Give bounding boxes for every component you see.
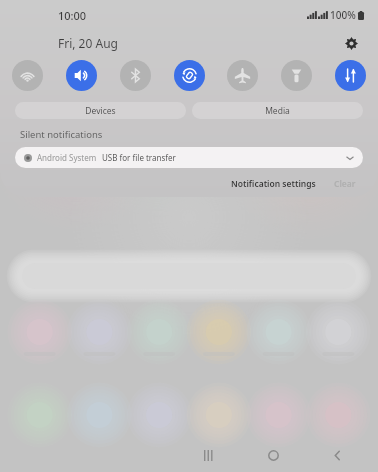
button[interactable]: Mobile data	[335, 60, 366, 91]
button[interactable]: Bluetooth	[120, 60, 151, 91]
staticText: Clear	[334, 178, 356, 190]
staticText: Fri, 20 Aug	[58, 35, 118, 51]
staticText: 10:00	[58, 8, 87, 23]
button[interactable]: Home	[254, 438, 292, 472]
button[interactable]: Sound	[66, 60, 97, 91]
staticText: Silent notifications	[20, 128, 103, 141]
button[interactable]: Flashlight	[281, 60, 312, 91]
staticText: 100%	[330, 8, 356, 22]
button[interactable]: Recents	[190, 438, 228, 472]
button[interactable]: Clear	[330, 176, 360, 192]
staticText: Media	[265, 105, 290, 117]
button[interactable]: Wi-Fi	[12, 60, 43, 91]
staticText: USB for file transfer	[102, 152, 176, 163]
button[interactable]: Auto rotate	[174, 60, 205, 91]
button[interactable]: Back	[318, 438, 356, 472]
staticText: Android System	[37, 152, 97, 163]
button[interactable]: Android System	[15, 147, 363, 168]
staticText: Notification settings	[231, 178, 316, 190]
staticText: Devices	[85, 105, 116, 117]
button[interactable]: Notification settings	[227, 176, 320, 192]
button[interactable]: Media	[192, 102, 363, 119]
button[interactable]: Settings	[340, 32, 362, 54]
button[interactable]: Devices	[15, 102, 186, 119]
button[interactable]: Airplane mode	[227, 60, 258, 91]
